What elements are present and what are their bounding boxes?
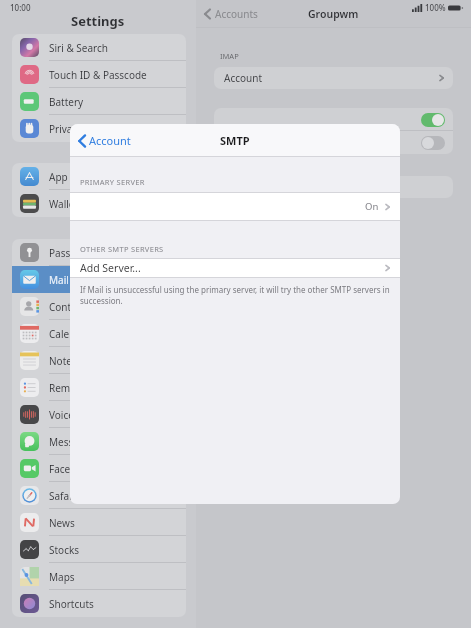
staticText: OTHER SMTP SERVERS [80, 244, 164, 254]
button[interactable]: Wallet & Apple Pay [12, 190, 186, 217]
staticText: Accounts [215, 7, 258, 21]
button[interactable]: Touch ID & Passcode [12, 61, 186, 88]
button[interactable]: Shortcuts [12, 590, 186, 617]
staticText: Wallet & Apple Pay [49, 197, 137, 211]
button[interactable]: Mail [12, 266, 186, 293]
staticText: Safari [49, 489, 76, 503]
button[interactable]: Notes [12, 347, 186, 374]
button[interactable]: Voice Memos [12, 401, 186, 428]
staticText: Voice Memos [49, 408, 112, 422]
staticText: App Store [49, 170, 96, 184]
button[interactable]: Siri & Search [12, 34, 186, 61]
button[interactable]: Battery [12, 88, 186, 115]
staticText: On [365, 200, 379, 213]
button[interactable]: Account [78, 133, 131, 148]
button[interactable]: Maps [12, 563, 186, 590]
staticText: News [49, 516, 75, 530]
button[interactable]: Toggle on [214, 108, 453, 131]
staticText: Notes [49, 354, 77, 368]
staticText: Touch ID & Passcode [49, 68, 147, 82]
staticText: 10:00 [10, 2, 31, 13]
button[interactable] [214, 176, 453, 198]
staticText: Maps [49, 570, 75, 584]
button[interactable]: Add Server... [70, 259, 400, 277]
staticText: Contacts [49, 300, 90, 314]
staticText: Reminders [49, 381, 100, 395]
staticText: FaceTime [49, 462, 94, 476]
button[interactable]: Account [214, 67, 453, 89]
button[interactable]: Reminders [12, 374, 186, 401]
staticText: Passwords [49, 246, 100, 260]
button[interactable]: Contacts [12, 293, 186, 320]
staticText: Groupwm [308, 7, 359, 21]
staticText: SMTP [220, 133, 250, 148]
staticText: Stocks [49, 543, 80, 557]
button[interactable]: Calendar [12, 320, 186, 347]
button[interactable]: On [70, 193, 400, 220]
button[interactable]: News [12, 509, 186, 536]
button[interactable]: Stocks [12, 536, 186, 563]
button[interactable]: Toggle off [421, 136, 445, 150]
staticText: Settings [71, 12, 125, 30]
staticText: Mail [49, 273, 69, 287]
staticText: Privacy [49, 122, 83, 136]
button[interactable]: Accounts [204, 7, 258, 21]
staticText: Account [89, 133, 131, 148]
button[interactable]: Privacy [12, 115, 186, 142]
staticText: IMAP [220, 51, 239, 61]
staticText: Battery [49, 95, 84, 109]
button[interactable]: Messages [12, 428, 186, 455]
staticText: Shortcuts [49, 597, 94, 611]
staticText: Messages [49, 435, 96, 449]
staticText: Add Server... [80, 261, 141, 275]
staticText: If Mail is unsuccessful using the primar… [80, 284, 390, 306]
button[interactable]: Passwords [12, 239, 186, 266]
staticText: 100% [425, 2, 446, 13]
button[interactable]: Safari [12, 482, 186, 509]
staticText: Calendar [49, 327, 92, 341]
button[interactable]: FaceTime [12, 455, 186, 482]
staticText: PRIMARY SERVER [80, 177, 145, 187]
button[interactable]: App Store [12, 163, 186, 190]
staticText: Siri & Search [49, 41, 108, 55]
button[interactable]: Toggle off [214, 131, 453, 154]
button[interactable]: Toggle on [421, 113, 445, 127]
staticText: Account [224, 71, 263, 85]
